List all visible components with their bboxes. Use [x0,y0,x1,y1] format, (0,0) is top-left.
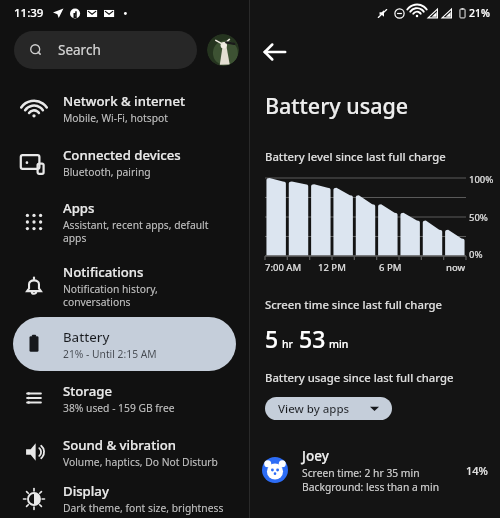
staticText: 100% [469,173,494,186]
staticText: Display [63,482,109,500]
staticText: View by apps [278,401,350,417]
staticText: Background: less than a min [302,480,440,494]
staticText: Connected devices [63,146,181,164]
staticText: 7:00 AM [265,261,302,274]
staticText: Storage [63,382,112,400]
staticText: 0% [469,248,483,261]
staticText: Battery usage [265,91,409,120]
staticText: Joey [302,447,329,465]
staticText: Battery [63,328,110,346]
button[interactable]: Search [14,31,197,69]
staticText: 14% [466,463,488,478]
staticText: Volume, haptics, Do Not Disturb [63,455,218,469]
staticText: Screen time: 2 hr 35 min [302,466,420,480]
staticText: 11:39 [14,5,44,21]
staticText: Assistant, recent apps, default apps [63,218,209,245]
button[interactable]: Connected devices [13,135,236,189]
button[interactable]: Joey [250,442,500,498]
staticText: Battery level since last full charge [265,149,446,164]
staticText: 12 PM [318,261,346,274]
button[interactable]: Account [207,34,239,66]
button[interactable]: Notifications [13,255,236,317]
staticText: 53 [299,323,326,354]
staticText: Battery usage since last full charge [265,370,454,385]
staticText: 38% used - 159 GB free [63,401,175,415]
staticText: Notifications [63,263,144,281]
staticText: Mobile, Wi-Fi, hotspot [63,111,168,125]
button[interactable]: Display [13,479,236,518]
button[interactable]: Storage [13,371,236,425]
staticText: Sound & vibration [63,436,177,454]
staticText: min [329,337,349,351]
staticText: 5 [265,323,279,354]
button[interactable]: Apps [13,189,236,255]
staticText: Search [58,41,101,59]
button[interactable]: Network & internet [13,81,236,135]
staticText: 50% [469,211,488,224]
staticText: 21% - Until 2:15 AM [63,347,157,361]
staticText: Notification history, conversations [63,282,158,309]
staticText: 6 PM [379,261,402,274]
button[interactable]: View by apps [265,397,392,420]
staticText: Dark theme, font size, brightness [63,501,224,515]
button[interactable]: Battery [13,317,236,371]
staticText: Apps [63,199,95,217]
button[interactable]: Back [258,35,292,69]
button[interactable]: Sound & vibration [13,425,236,479]
staticText: hr [282,337,294,351]
staticText: Screen time since last full charge [265,297,443,312]
staticText: now [446,261,466,274]
staticText: 21% [469,6,490,20]
staticText: Network & internet [63,92,185,110]
staticText: Bluetooth, pairing [63,165,151,179]
